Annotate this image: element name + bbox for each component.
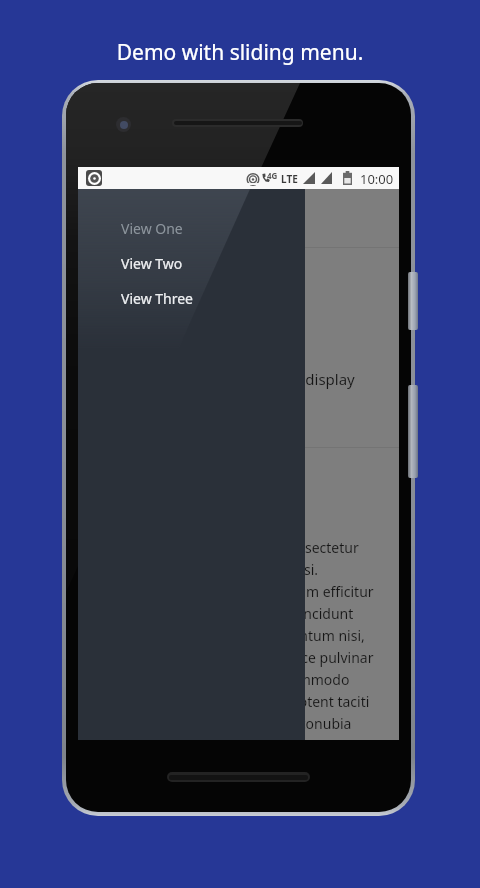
staticText: 10:00 [360,170,394,188]
staticText: adipiscing elit. Donec dapibus nisi. [92,560,319,579]
staticText: nunc. Integer rhoncus ut elementum nisi, [92,626,365,645]
button[interactable]: Volume buttons [408,385,418,478]
other: Front camera [116,117,131,132]
staticText: Lorem ipsum dolor sit amet, consectetur [92,538,359,557]
button[interactable]: View Three [78,281,305,316]
staticText: velit, non hendrerit lorem ipso tincidun… [92,604,354,623]
button[interactable]: View Two [78,246,305,281]
button[interactable]: App launcher [86,170,102,186]
button[interactable]: View One [78,211,305,246]
staticText: View One [121,219,183,238]
button[interactable]: Lorem ipsum a sample text to display [92,369,355,389]
staticText: Demo with sliding menu. [0,38,480,67]
staticText: View Two [121,254,183,273]
staticText: 4G [267,170,278,181]
staticText: View Three [121,289,194,308]
staticText: nulla sit amet magna arcu id commodo [92,670,350,689]
button[interactable]: Power button [408,272,418,330]
staticText: Vestibulum bibendum, nulla quam efficitu… [92,582,374,601]
staticText: LTE [281,172,298,186]
staticText: quis ultrices nulla. Nam quis fusce pulv… [92,648,374,667]
staticText: tempus. Class aptent sit amet potent tac… [92,692,370,711]
staticText: sociosqu ad litora torquent per conubia [92,714,352,733]
